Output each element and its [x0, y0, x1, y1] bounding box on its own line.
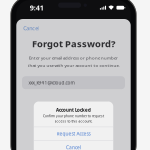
staticText: access to this account. — [54, 119, 92, 124]
staticText: Confirm your phone number to request — [43, 114, 104, 118]
staticText: Request Access — [56, 130, 90, 137]
staticText: Forgot Password? — [32, 37, 115, 50]
staticText: Enter your email address or phone number — [29, 55, 118, 61]
staticText: 9:41 — [30, 3, 44, 13]
button[interactable]: Cancel — [16, 19, 46, 35]
staticText: Cancel — [23, 24, 39, 32]
staticText: xxx_k941@icloud.com — [28, 79, 74, 86]
button[interactable]: Cancel — [34, 141, 113, 150]
staticText: Account Locked — [56, 107, 91, 113]
staticText: Cancel — [66, 144, 81, 150]
staticText: that you use with your account to contin… — [27, 62, 119, 68]
button[interactable]: Request Access — [34, 127, 113, 140]
